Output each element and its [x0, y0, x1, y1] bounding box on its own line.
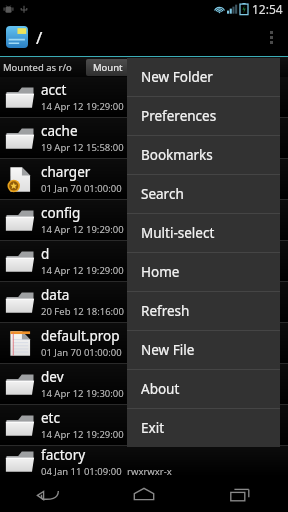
button[interactable]: Refresh — [127, 291, 280, 330]
button[interactable]: dev — [0, 364, 288, 405]
staticText: Bookmarks — [141, 146, 213, 164]
staticText: etc — [41, 409, 60, 427]
staticText: d — [41, 245, 50, 263]
button[interactable]: default.prop — [0, 323, 288, 364]
button[interactable]: New File — [127, 330, 280, 369]
staticText: 14 Apr 12 19:29:00 — [41, 264, 124, 277]
staticText: Refresh — [141, 302, 190, 320]
staticText: Home — [141, 263, 180, 281]
staticText: 20 Feb 12 18:16:00 — [41, 305, 124, 318]
staticText: data — [41, 286, 70, 304]
staticText: New Folder — [141, 68, 213, 86]
staticText: 04 Jan 11 01:09:00 — [41, 465, 122, 476]
button[interactable]: New Folder — [127, 58, 280, 96]
staticText: / — [36, 26, 43, 49]
button[interactable]: Back — [0, 476, 96, 512]
button[interactable]: About — [127, 369, 280, 408]
button[interactable]: charger — [0, 159, 288, 200]
staticText: factory — [41, 446, 86, 464]
staticText: acct — [41, 81, 67, 99]
button[interactable]: Bookmarks — [127, 135, 280, 174]
button[interactable]: More options — [254, 18, 288, 56]
staticText: About — [141, 380, 180, 398]
button[interactable]: Multi-select — [127, 213, 280, 252]
staticText: Exit — [141, 419, 165, 437]
button[interactable]: cache — [0, 118, 288, 159]
staticText: New File — [141, 341, 195, 359]
button[interactable]: acct — [0, 77, 288, 118]
staticText: Mounted as r/o — [3, 61, 72, 74]
button[interactable]: Exit — [127, 408, 280, 447]
staticText: 19 Apr 12 15:58:00 — [41, 141, 124, 154]
staticText: Preferences — [141, 107, 217, 125]
button[interactable]: Search — [127, 174, 280, 213]
staticText: cache — [41, 122, 78, 140]
button[interactable]: etc — [0, 405, 288, 446]
staticText: rwxrwxr-x — [127, 465, 172, 476]
staticText: 14 Apr 12 19:30:00 — [41, 387, 124, 400]
staticText: 14 Apr 12 19:29:00 — [41, 100, 124, 113]
staticText: Mount — [93, 61, 123, 74]
staticText: 01 Jan 70 01:00:00 — [41, 346, 122, 359]
button[interactable]: data — [0, 282, 288, 323]
button[interactable]: Home — [127, 252, 280, 291]
button[interactable]: Home — [96, 476, 192, 512]
staticText: Search — [141, 185, 184, 203]
staticText: default.prop — [41, 327, 120, 345]
staticText: 12:54 — [252, 1, 283, 17]
button[interactable]: config — [0, 200, 288, 241]
staticText: 14 Apr 12 19:29:00 — [41, 223, 124, 236]
button[interactable]: Mount — [86, 59, 130, 76]
button[interactable]: Recent apps — [192, 476, 288, 512]
staticText: Multi-select — [141, 224, 215, 242]
staticText: charger — [41, 163, 91, 181]
staticText: config — [41, 204, 81, 222]
button[interactable]: d — [0, 241, 288, 282]
staticText: 14 Apr 12 19:29:00 — [41, 428, 124, 441]
button[interactable]: Preferences — [127, 96, 280, 135]
staticText: dev — [41, 368, 64, 386]
button[interactable]: factory — [0, 446, 288, 476]
staticText: 01 Jan 70 01:00:00 — [41, 182, 122, 195]
